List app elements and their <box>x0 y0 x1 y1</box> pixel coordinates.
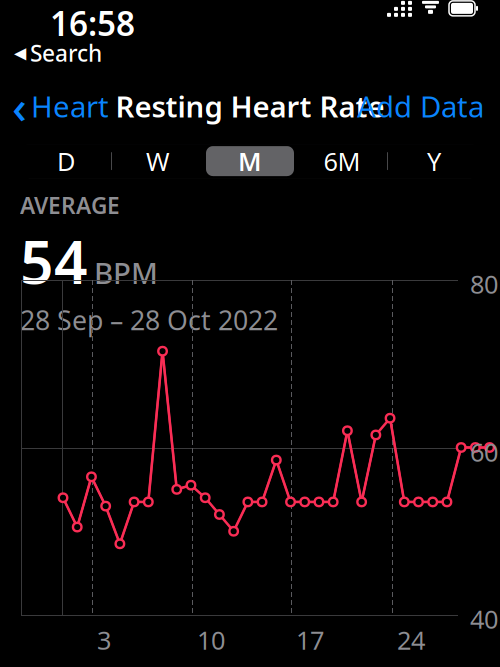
staticText: 40 <box>470 602 498 636</box>
staticText: 24 <box>397 623 425 657</box>
staticText: 28 Sep – 28 Oct 2022 <box>20 302 278 337</box>
staticText: BPM <box>94 253 158 292</box>
button[interactable]: ‹ <box>0 70 109 142</box>
staticText: 80 <box>470 267 498 301</box>
staticText: 3 <box>97 623 111 657</box>
staticText: W <box>146 144 170 178</box>
staticText: Y <box>427 144 441 178</box>
staticText: AVERAGE <box>20 190 120 220</box>
button[interactable]: Add Data <box>357 81 500 132</box>
staticText: Search <box>30 38 102 68</box>
staticText: 10 <box>197 623 225 657</box>
button[interactable]: Y <box>388 144 480 178</box>
staticText: M <box>238 144 262 178</box>
staticText: D <box>57 144 75 178</box>
staticText: 16:58 <box>50 1 135 45</box>
button[interactable]: ◀ <box>0 38 102 68</box>
button[interactable]: M <box>204 144 296 178</box>
staticText: 54 <box>20 222 88 300</box>
staticText: Heart <box>31 87 109 126</box>
button[interactable]: D <box>20 144 112 178</box>
button[interactable]: W <box>112 144 204 178</box>
staticText: 17 <box>296 623 324 657</box>
staticText: Resting Heart Rate <box>115 87 384 126</box>
staticText: 60 <box>470 435 498 469</box>
staticText: 6M <box>323 144 360 178</box>
staticText: ◀ <box>14 44 26 62</box>
button[interactable]: 6M <box>296 144 388 178</box>
staticText: ‹ <box>12 76 27 136</box>
staticText: Add Data <box>357 87 484 126</box>
